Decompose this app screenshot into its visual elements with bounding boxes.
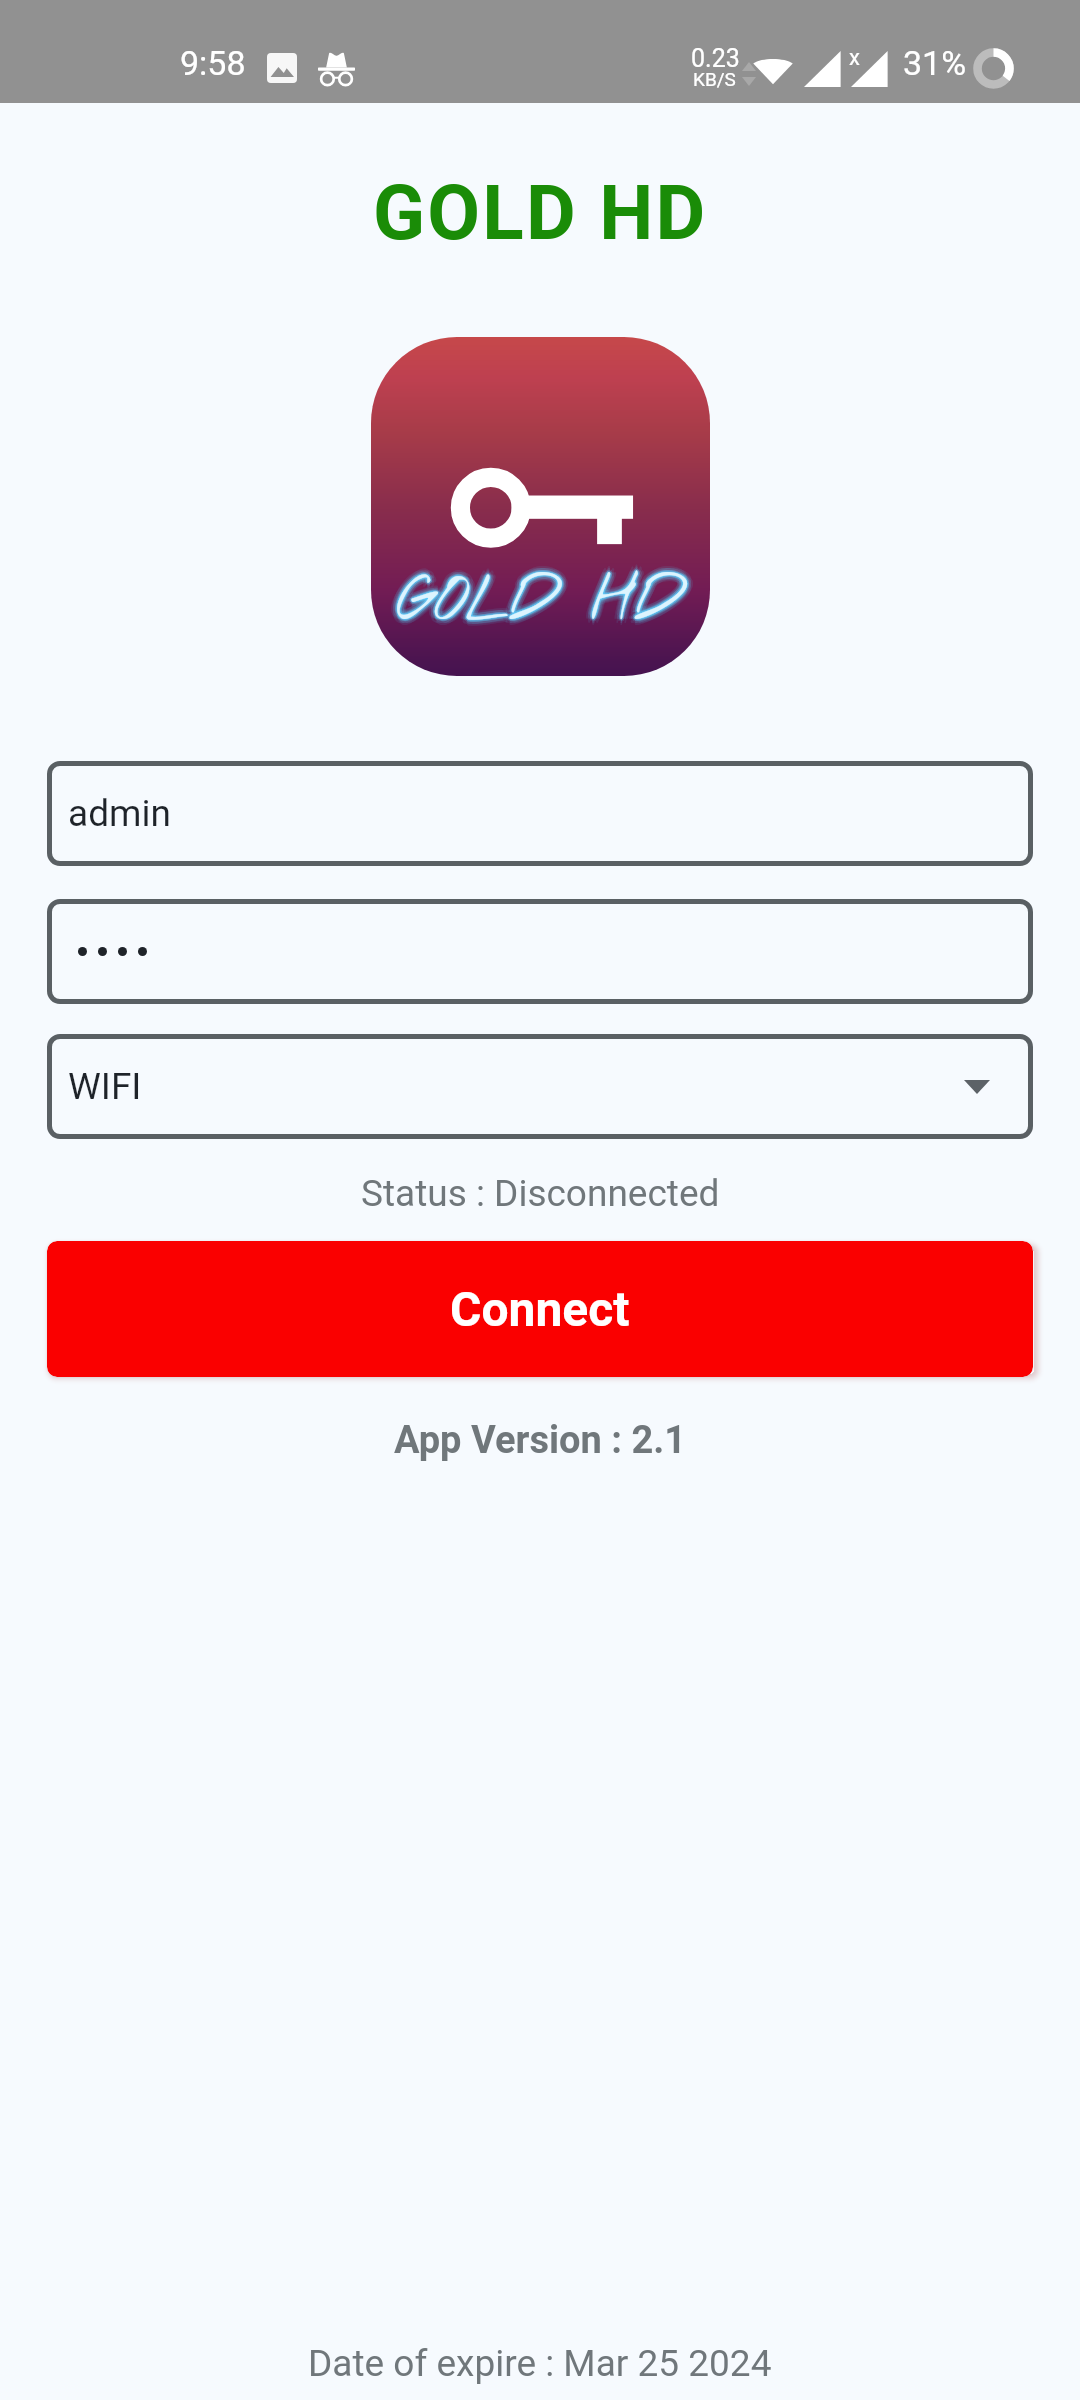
staticText: GOLD HD	[397, 557, 684, 640]
staticText: GOLD HD	[398, 560, 685, 643]
staticText: GOLD HD	[393, 557, 680, 640]
staticText: GOLD HD	[395, 559, 682, 642]
other: Select protocol	[964, 1080, 990, 1094]
staticText: GOLD HD	[397, 555, 684, 638]
staticText: GOLD HD	[401, 565, 688, 648]
staticText: GOLD HD	[395, 561, 682, 644]
staticText: 9:58	[180, 43, 246, 83]
staticText: GOLD HD	[403, 561, 690, 644]
staticText: GOLD HD	[393, 561, 680, 644]
button[interactable]: Connection type: WIFI	[47, 1034, 1033, 1139]
staticText: GOLD HD	[396, 562, 683, 645]
staticText: GOLD HD	[373, 168, 708, 258]
staticText: GOLD HD	[397, 563, 684, 646]
button[interactable]: Connect	[47, 1241, 1033, 1377]
staticText: 31%	[903, 43, 967, 83]
staticText: GOLD HD	[397, 565, 684, 648]
staticText: Connect	[450, 1281, 630, 1337]
staticText: GOLD HD	[397, 559, 684, 642]
staticText: GOLD HD	[396, 560, 683, 643]
staticText: KB/S	[693, 68, 736, 90]
staticText: GOLD HD	[399, 559, 686, 642]
button[interactable]: Password	[47, 899, 1033, 1004]
staticText: GOLD HD	[399, 563, 686, 646]
staticText: GOLD HD	[393, 565, 680, 648]
staticText: GOLD HD	[391, 561, 678, 644]
staticText: x	[849, 45, 860, 71]
staticText: GOLD HD	[401, 557, 688, 640]
staticText: GOLD HD	[397, 567, 684, 650]
staticText: GOLD HD	[395, 563, 682, 646]
staticText: GOLD HD	[397, 561, 684, 644]
staticText: admin	[68, 792, 171, 835]
staticText: GOLD HD	[401, 561, 688, 644]
staticText: GOLD HD	[398, 562, 685, 645]
staticText: 0.23	[691, 44, 740, 73]
button[interactable]: Username	[47, 761, 1033, 866]
staticText: App Version : 2.1	[394, 1418, 687, 1463]
staticText: GOLD HD	[399, 561, 686, 644]
staticText: Status : Disconnected	[361, 1172, 720, 1215]
staticText: Date of expire : Mar 25 2024	[308, 2342, 772, 2385]
staticText: WIFI	[68, 1065, 142, 1108]
